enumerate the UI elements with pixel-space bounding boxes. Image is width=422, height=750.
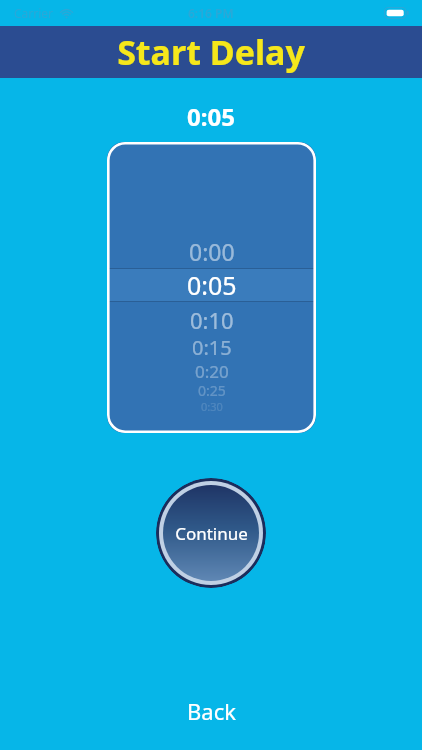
staticText: 0:25 (198, 381, 226, 400)
button[interactable]: Back (165, 692, 258, 730)
staticText: 0:05 (187, 268, 237, 302)
staticText: 0:30 (201, 399, 223, 414)
button[interactable]: Continue (156, 478, 266, 588)
staticText: 0:05 (187, 100, 235, 132)
staticText: 6:16 PM (188, 5, 234, 21)
staticText: 0:00 (189, 236, 235, 267)
staticText: 0:10 (190, 305, 234, 335)
staticText: 0:20 (195, 360, 229, 383)
button[interactable]: Start delay picker (107, 142, 316, 433)
staticText: Back (187, 696, 236, 726)
staticText: Start Delay (117, 29, 305, 75)
staticText: Carrier (14, 5, 54, 21)
staticText: Continue (175, 522, 248, 545)
staticText: 0:15 (192, 334, 232, 361)
